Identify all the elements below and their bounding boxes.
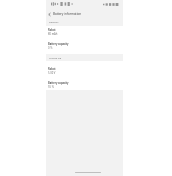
staticText: Charge log <box>49 56 62 59</box>
staticText: Battery capacity <box>48 81 69 85</box>
button[interactable]: Robot <box>46 61 123 76</box>
staticText: Battery capacity <box>48 42 69 46</box>
staticText: 0 % <box>48 46 53 50</box>
staticText: Robot <box>48 67 56 71</box>
staticText: 5.00 V <box>48 71 56 75</box>
button[interactable]: Robot <box>46 26 123 40</box>
staticText: Robot <box>48 28 56 32</box>
button[interactable]: Navigate up <box>47 12 52 17</box>
staticText: Battery information <box>53 12 82 16</box>
staticText: 55 % <box>48 85 54 89</box>
staticText: 80 mAh <box>48 32 58 36</box>
staticText: Defaults <box>49 20 59 23</box>
button[interactable]: Battery capacity <box>46 76 123 91</box>
button[interactable]: Battery capacity <box>46 40 123 54</box>
